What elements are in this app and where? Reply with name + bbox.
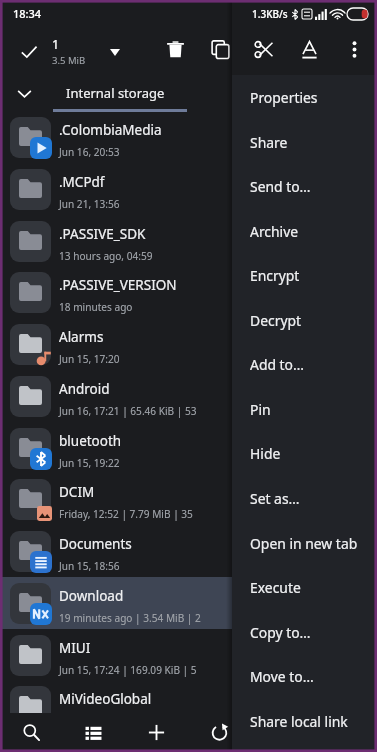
staticText: Documents xyxy=(59,535,132,553)
button[interactable]: .ColombiaMedia xyxy=(0,111,377,163)
button[interactable]: Cut xyxy=(242,27,286,71)
staticText: Share xyxy=(250,133,288,152)
button[interactable]: Android xyxy=(0,370,377,422)
staticText: 18 minutes ago xyxy=(59,300,133,314)
staticText: Send to… xyxy=(250,177,311,196)
button[interactable]: Share xyxy=(232,120,377,165)
staticText: Internal storage xyxy=(66,84,165,102)
staticText: Copy to… xyxy=(250,623,311,642)
button[interactable]: Decrypt xyxy=(232,298,377,343)
staticText: .PASSIVE_SDK xyxy=(59,225,146,243)
button[interactable]: Clear selection xyxy=(7,30,51,74)
staticText: Move to… xyxy=(250,667,314,686)
staticText: Jun 16, 20:53 xyxy=(59,145,120,159)
button[interactable]: bluetooth xyxy=(0,422,377,474)
staticText: Jun 15, 18:56 xyxy=(59,559,120,573)
staticText: Jun 15, 17:24 xyxy=(59,714,120,728)
button[interactable]: Settings xyxy=(314,713,377,752)
staticText: bluetooth xyxy=(59,432,122,450)
staticText: Decrypt xyxy=(250,311,302,330)
staticText: Share local link xyxy=(250,712,348,731)
staticText: Hide xyxy=(250,444,281,463)
staticText: Jun 15, 17:24 | 169.09 KiB | 5 xyxy=(59,663,197,677)
button[interactable]: Documents xyxy=(0,525,377,577)
button[interactable]: Send to… xyxy=(232,164,377,209)
button[interactable]: Archive xyxy=(232,209,377,254)
button[interactable]: Move to… xyxy=(232,654,377,699)
staticText: Android xyxy=(59,380,110,398)
staticText: Jun 15, 19:22 xyxy=(59,456,120,470)
staticText: Execute xyxy=(250,578,301,597)
button[interactable]: DCIM xyxy=(0,473,377,525)
staticText: Open in new tab xyxy=(250,534,358,553)
button[interactable]: Sort xyxy=(251,713,314,752)
button[interactable]: Share local link xyxy=(232,699,377,744)
button[interactable]: .MCPdf xyxy=(0,163,377,215)
button[interactable]: Delete xyxy=(153,27,197,71)
staticText: .ColombiaMedia xyxy=(59,121,162,139)
staticText: 1.3KB/s xyxy=(252,7,288,21)
staticText: Download xyxy=(59,587,124,605)
staticText: .PASSIVE_VERSION xyxy=(59,276,177,294)
staticText: DCIM xyxy=(59,483,95,501)
button[interactable]: Add to… xyxy=(232,342,377,387)
staticText: Jun 15, 17:20 xyxy=(59,352,120,366)
button[interactable]: Hide xyxy=(232,431,377,476)
button[interactable]: MIUI xyxy=(0,629,377,681)
button[interactable]: New xyxy=(125,713,188,752)
button[interactable]: Alarms xyxy=(0,318,377,370)
staticText: Add to… xyxy=(250,355,304,374)
button[interactable]: Properties xyxy=(232,75,377,120)
staticText: 19 minutes ago | 3.54 MiB | 2 xyxy=(59,611,201,625)
button[interactable]: Download xyxy=(0,577,377,629)
button[interactable]: Choose storage xyxy=(4,76,44,111)
button[interactable]: MiVideoGlobal xyxy=(0,680,377,732)
button[interactable]: Search xyxy=(0,713,62,752)
staticText: .MCPdf xyxy=(59,173,105,191)
button[interactable]: Copy to… xyxy=(232,610,377,655)
staticText: 13 hours ago, 04:59 xyxy=(59,249,153,263)
button[interactable]: Copy xyxy=(198,27,242,71)
button[interactable]: Set as… xyxy=(232,476,377,521)
staticText: Jun 21, 13:56 xyxy=(59,197,120,211)
staticText: Pin xyxy=(250,400,271,419)
button[interactable]: List view xyxy=(62,713,125,752)
button[interactable]: .PASSIVE_SDK xyxy=(0,215,377,267)
staticText: MIUI xyxy=(59,639,91,657)
staticText: Properties xyxy=(250,88,318,107)
staticText: Alarms xyxy=(59,328,104,346)
staticText: MiVideoGlobal xyxy=(59,690,152,708)
button[interactable]: Open in new tab xyxy=(232,521,377,566)
button[interactable]: Selection menu xyxy=(100,37,130,67)
staticText: Encrypt xyxy=(250,266,300,285)
button[interactable]: Rename xyxy=(287,27,331,71)
button[interactable]: Encrypt xyxy=(232,253,377,298)
staticText: Archive xyxy=(250,222,299,241)
button[interactable]: More options xyxy=(332,27,376,71)
button[interactable]: Execute xyxy=(232,565,377,610)
staticText: Set as… xyxy=(250,489,300,508)
staticText: 1 xyxy=(52,36,60,53)
staticText: Jun 16, 17:21 | 65.46 KiB | 53 xyxy=(59,404,197,418)
button[interactable]: Refresh xyxy=(188,713,251,752)
staticText: 18:34 xyxy=(13,6,42,21)
button[interactable]: Pin xyxy=(232,387,377,432)
staticText: 3.5 MiB xyxy=(52,54,86,67)
button[interactable]: .PASSIVE_VERSION xyxy=(0,266,377,318)
staticText: Friday, 12:52 | 7.79 MiB | 35 xyxy=(59,507,193,521)
